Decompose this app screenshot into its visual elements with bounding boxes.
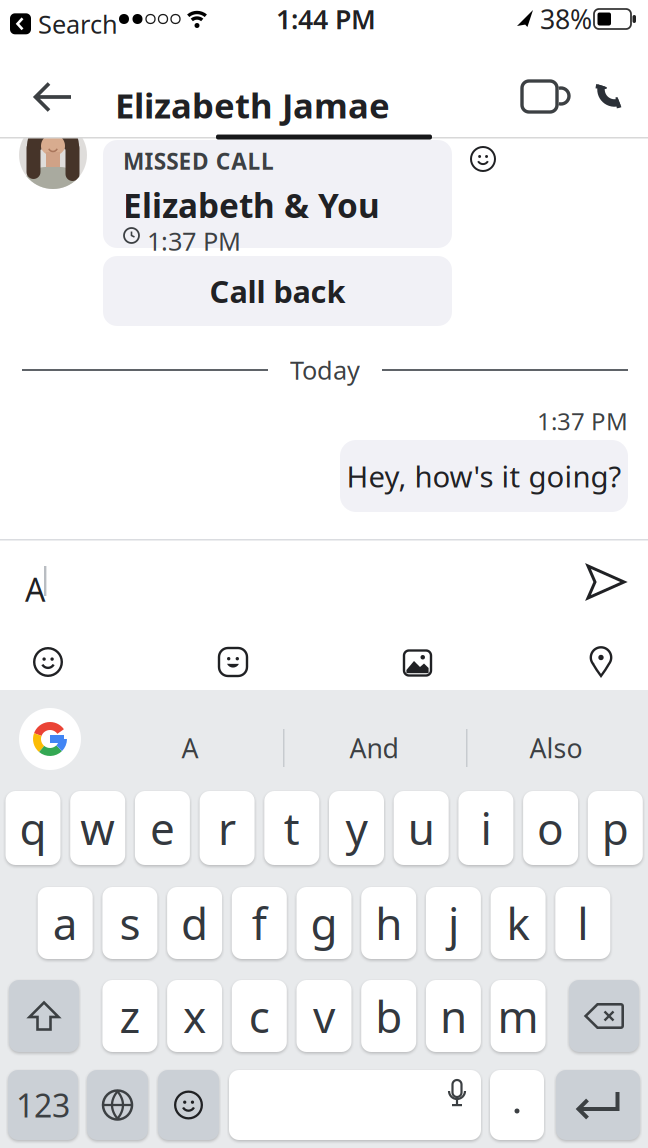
staticText: s (119, 894, 140, 952)
button[interactable]: Period (490, 1070, 544, 1140)
staticText: g (310, 894, 337, 952)
button[interactable]: 123 (8, 1070, 78, 1140)
staticText: z (119, 987, 140, 1045)
staticText: A (181, 730, 198, 766)
staticText: Hey, how's it going? (346, 456, 621, 495)
button[interactable]: x (167, 980, 222, 1052)
button[interactable]: Call back (103, 256, 452, 326)
button[interactable]: k (491, 887, 546, 959)
staticText: 38% (540, 1, 592, 37)
staticText: p (602, 799, 629, 857)
staticText: l (577, 894, 588, 952)
staticText: v (313, 987, 335, 1045)
staticText: r (218, 799, 236, 857)
button[interactable]: s (102, 887, 157, 959)
staticText: 1:44 PM (276, 1, 376, 37)
staticText: b (375, 987, 402, 1045)
staticText: c (249, 987, 270, 1045)
button[interactable]: o (523, 791, 578, 865)
button[interactable]: u (394, 791, 449, 865)
staticText: m (498, 987, 539, 1045)
button[interactable]: w (70, 791, 125, 865)
button[interactable]: Return (556, 1070, 640, 1140)
staticText: u (408, 799, 435, 857)
staticText: Search (38, 7, 118, 41)
staticText: k (507, 894, 530, 952)
staticText: Call back (209, 271, 345, 311)
button[interactable]: g (296, 887, 351, 959)
staticText: x (183, 987, 206, 1045)
button[interactable]: v (296, 980, 351, 1052)
button[interactable]: r (200, 791, 255, 865)
button[interactable]: b (361, 980, 416, 1052)
staticText: And (349, 730, 398, 766)
staticText: w (80, 799, 115, 857)
button[interactable]: z (102, 980, 157, 1052)
staticText: f (252, 894, 267, 952)
button[interactable]: t (264, 791, 319, 865)
button[interactable]: Emoji (33, 647, 63, 677)
button[interactable]: i (458, 791, 513, 865)
button[interactable]: f (232, 887, 287, 959)
staticText: h (375, 894, 402, 952)
button[interactable]: And (314, 733, 434, 763)
button[interactable]: Back to Search (10, 7, 118, 41)
button[interactable]: Also (496, 733, 616, 763)
button[interactable]: c (232, 980, 287, 1052)
staticText: d (181, 894, 208, 952)
button[interactable]: l (555, 887, 610, 959)
staticText: n (440, 987, 467, 1045)
button[interactable]: e (135, 791, 190, 865)
button[interactable]: Delete (569, 980, 639, 1052)
staticText: y (345, 799, 367, 857)
button[interactable]: Back (33, 82, 73, 112)
button[interactable]: Stickers (218, 647, 248, 677)
button[interactable]: Shift (9, 980, 79, 1052)
button[interactable]: React (470, 146, 496, 172)
button[interactable]: h (361, 887, 416, 959)
staticText: Also (529, 730, 582, 766)
staticText: 1:37 PM (147, 224, 241, 258)
button[interactable]: Send (586, 564, 626, 600)
staticText: a (53, 894, 78, 952)
button[interactable]: j (426, 887, 481, 959)
staticText: e (150, 799, 175, 857)
button[interactable]: m (491, 980, 546, 1052)
staticText: i (480, 799, 491, 857)
button[interactable]: y (329, 791, 384, 865)
staticText: Elizabeth Jamae (115, 82, 390, 128)
button[interactable]: Call (594, 78, 630, 114)
button[interactable]: Next keyboard (87, 1070, 148, 1140)
staticText: 1:37 PM (537, 405, 628, 437)
button[interactable]: q (5, 791, 60, 865)
staticText: q (19, 799, 46, 857)
button[interactable]: d (167, 887, 222, 959)
button[interactable]: Space (229, 1070, 481, 1140)
staticText: Elizabeth & You (123, 183, 380, 227)
button[interactable]: Video call (514, 80, 565, 113)
button[interactable]: p (588, 791, 643, 865)
staticText: j (448, 894, 459, 952)
button[interactable]: Emoji (158, 1070, 219, 1140)
button[interactable]: a (38, 887, 93, 959)
button[interactable]: A (130, 733, 250, 763)
staticText: Today (290, 353, 360, 387)
staticText: o (537, 799, 564, 857)
staticText: t (284, 799, 300, 857)
staticText: 123 (16, 1084, 70, 1126)
button[interactable]: n (426, 980, 481, 1052)
button[interactable]: Gboard (19, 708, 81, 770)
button[interactable]: Photos (403, 649, 432, 677)
staticText: A (25, 568, 45, 610)
staticText: MISSED CALL (123, 146, 274, 176)
button[interactable]: Location (588, 646, 614, 678)
